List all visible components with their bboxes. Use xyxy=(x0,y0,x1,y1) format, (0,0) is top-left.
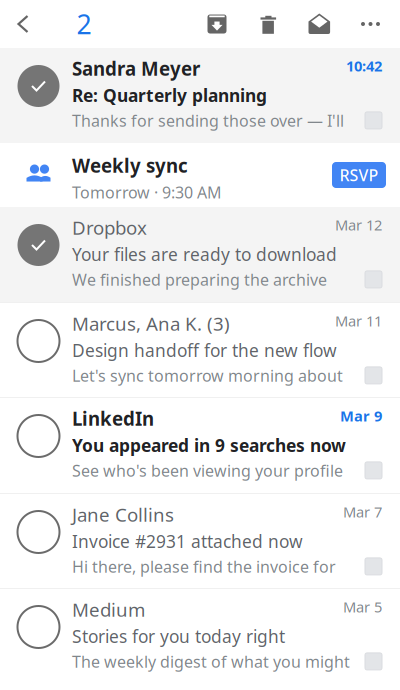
button[interactable]: Dropbox xyxy=(0,207,400,302)
button[interactable]: Medium xyxy=(0,589,400,690)
button[interactable]: Delete xyxy=(243,0,294,48)
staticText: Stories for you today right xyxy=(72,625,285,648)
staticText: Mar 11 xyxy=(335,311,382,330)
staticText: We finished preparing the archive xyxy=(72,269,327,290)
staticText: Mar 5 xyxy=(343,597,382,616)
staticText: Your files are ready to download xyxy=(72,243,337,266)
staticText: Invoice #2931 attached now xyxy=(72,530,303,553)
button[interactable]: Weekly sync xyxy=(0,143,400,207)
staticText: Marcus, Ana K. (3) xyxy=(72,311,230,336)
staticText: 10:42 xyxy=(346,56,382,75)
staticText: Mar 7 xyxy=(343,502,382,521)
button[interactable]: 2 xyxy=(47,0,121,48)
button[interactable]: Jane Collins xyxy=(0,494,400,588)
staticText: Re: Quarterly planning xyxy=(72,84,267,107)
staticText: Design handoff for the new flow xyxy=(72,339,337,362)
staticText: Tomorrow · 9:30 AM xyxy=(72,182,222,203)
staticText: RSVP xyxy=(339,164,378,186)
button[interactable]: Back xyxy=(0,0,47,48)
staticText: Weekly sync xyxy=(72,153,188,178)
staticText: You appeared in 9 searches now xyxy=(72,434,346,457)
button[interactable]: LinkedIn xyxy=(0,398,400,493)
staticText: Hi there, please find the invoice for xyxy=(72,556,336,577)
staticText: Mar 9 xyxy=(340,406,382,425)
staticText: Thanks for sending those over — I'll xyxy=(72,110,344,131)
staticText: Jane Collins xyxy=(72,502,174,527)
staticText: Mar 12 xyxy=(335,215,382,234)
staticText: LinkedIn xyxy=(72,406,154,431)
staticText: See who's been viewing your profile xyxy=(72,460,343,481)
button[interactable]: Sandra Meyer xyxy=(0,48,400,143)
staticText: 2 xyxy=(76,6,91,42)
staticText: The weekly digest of what you might xyxy=(72,651,350,672)
button[interactable]: More options xyxy=(345,0,396,48)
staticText: Sandra Meyer xyxy=(72,56,200,81)
staticText: Let's sync tomorrow morning about xyxy=(72,365,343,386)
button[interactable]: Archive xyxy=(191,0,243,48)
button[interactable]: Mark as unread xyxy=(294,0,345,48)
button[interactable]: Marcus, Ana K. (3) xyxy=(0,303,400,397)
staticText: Dropbox xyxy=(72,215,147,240)
staticText: Medium xyxy=(72,597,145,622)
